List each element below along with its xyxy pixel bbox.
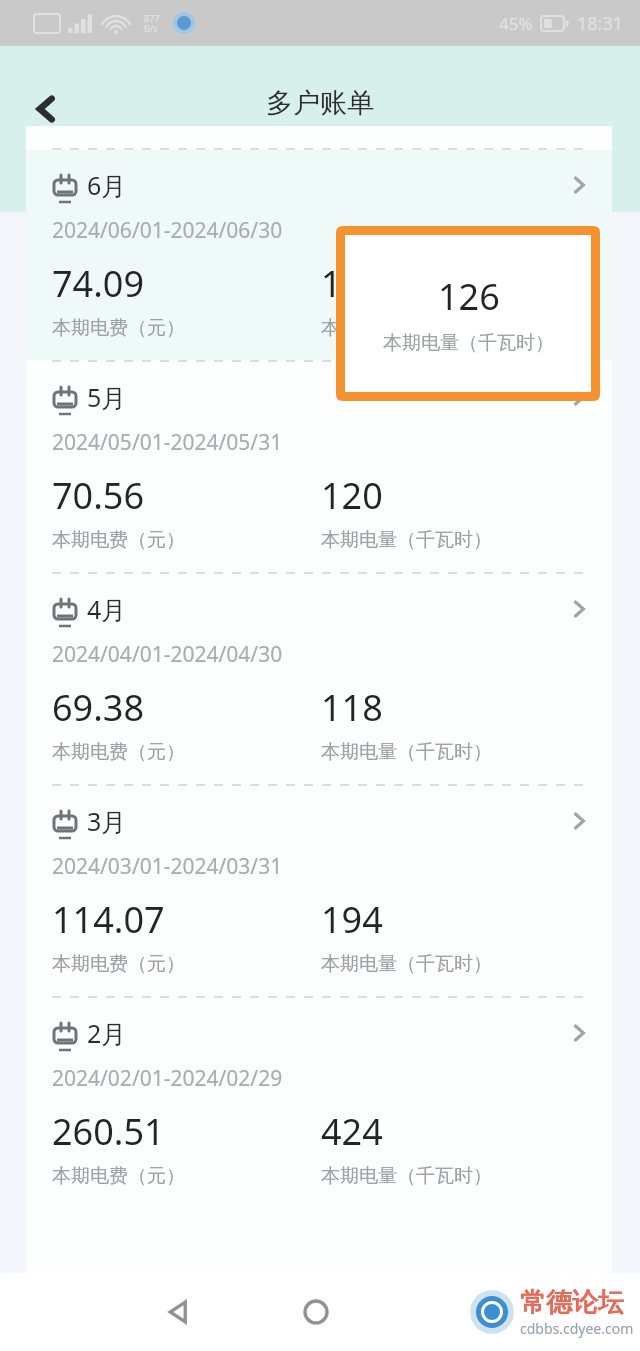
staticText: 260.51 [52,1107,165,1156]
button[interactable]: 5月 [26,362,612,572]
staticText: 126 [438,272,500,321]
button[interactable]: 4月 [26,574,612,784]
staticText: 69.38 [52,683,145,732]
staticText: 2024/04/01-2024/04/30 [52,640,283,669]
staticText: 120 [321,471,383,520]
staticText: 6月 [87,168,127,202]
staticText: 118 [321,683,383,732]
staticText: 本期电量（千瓦时） [383,331,554,355]
staticText: 2024/03/01-2024/03/31 [52,852,283,881]
button[interactable]: Back [14,77,78,141]
staticText: 本期电费（元） [52,952,185,976]
staticText: 45% [499,12,533,35]
staticText: 194 [321,895,383,944]
staticText: 3月 [87,804,127,838]
staticText: 18:31 [577,11,624,36]
button[interactable]: 2月 [26,998,612,1208]
staticText: 本期电费（元） [52,316,185,340]
staticText: 2024/02/01-2024/02/29 [52,1064,283,1093]
staticText: 本期电费（元） [52,528,185,552]
staticText: 877 B/s [144,12,160,34]
staticText: cdbbs.cdyee.com [520,1319,634,1338]
staticText: 70.56 [52,471,145,520]
staticText: 本期电量（千瓦时） [321,952,492,976]
staticText: 常德论坛 [520,1286,624,1319]
staticText: 5月 [87,380,127,414]
staticText: 2024/05/01-2024/05/31 [52,428,283,457]
staticText: 424 [321,1107,383,1156]
staticText: 2月 [87,1016,127,1050]
staticText: 本期电量（千瓦时） [321,528,492,552]
button[interactable]: Back [148,1282,208,1342]
staticText: 本期电量（千瓦时） [321,316,492,340]
staticText: 126 [321,259,383,308]
staticText: 4月 [87,592,127,626]
staticText: 多户账单 [266,86,374,120]
staticText: 本期电费（元） [52,1164,185,1188]
staticText: 本期电量（千瓦时） [321,740,492,764]
button[interactable]: Home [286,1282,346,1342]
staticText: 114.07 [52,895,165,944]
staticText: 74.09 [52,259,145,308]
staticText: 2024/06/01-2024/06/30 [52,216,283,245]
staticText: 本期电费（元） [52,740,185,764]
staticText: 本期电量（千瓦时） [321,1164,492,1188]
button[interactable]: 6月 [26,150,612,360]
button[interactable]: 3月 [26,786,612,996]
